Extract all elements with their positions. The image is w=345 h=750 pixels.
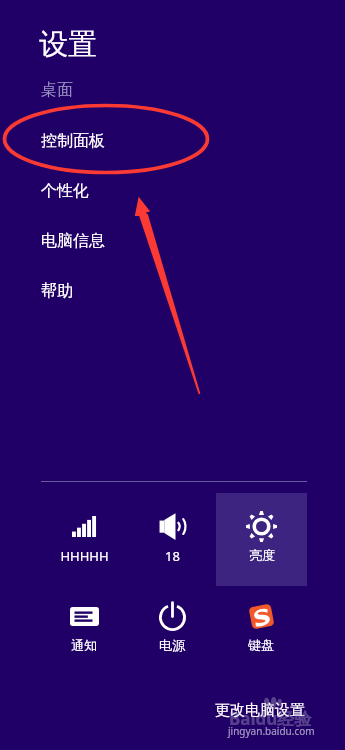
other: Keyboard	[249, 604, 274, 629]
staticText: jingyan.baidu.com	[228, 724, 315, 738]
staticText: 18	[165, 547, 180, 565]
button[interactable]: 帮助	[0, 275, 345, 307]
staticText: 亮度	[249, 547, 275, 563]
staticText: HHHHH	[60, 547, 109, 565]
staticText: 电脑信息	[41, 231, 105, 251]
staticText: 键盘	[248, 637, 274, 653]
other: Signal strength	[72, 516, 97, 537]
button[interactable]: Notifications	[40, 590, 128, 658]
button[interactable]: Signal strength	[40, 500, 128, 568]
staticText: 帮助	[41, 281, 73, 301]
staticText: 通知	[71, 637, 97, 653]
button[interactable]: Brightness	[216, 493, 307, 586]
other: Volume	[159, 513, 186, 540]
button[interactable]: Keyboard	[217, 590, 305, 658]
other: Brightness	[246, 511, 277, 542]
button[interactable]: Volume	[128, 500, 216, 568]
button[interactable]: 个性化	[0, 175, 345, 207]
button[interactable]: 控制面板	[0, 125, 345, 157]
staticText: Baidu经验	[229, 707, 312, 730]
staticText: 设置	[39, 26, 97, 63]
staticText: 更改电脑设置	[215, 701, 305, 720]
other: Notifications	[70, 607, 99, 626]
staticText: 个性化	[41, 181, 89, 201]
button[interactable]: 电脑信息	[0, 225, 345, 257]
staticText: 桌面	[41, 80, 73, 100]
button[interactable]: 更改电脑设置	[210, 700, 310, 720]
staticText: 控制面板	[41, 131, 105, 151]
staticText: 电源	[159, 637, 185, 653]
other: Power	[159, 601, 186, 631]
button[interactable]: Power	[128, 590, 216, 658]
